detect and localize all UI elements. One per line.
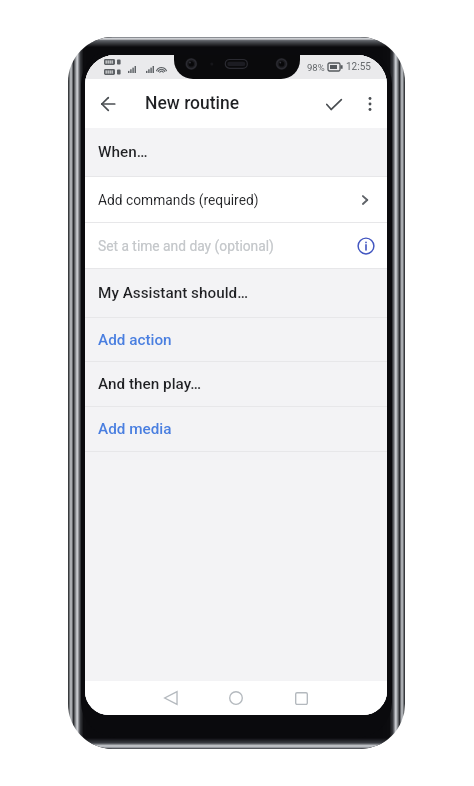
button[interactable]: And then play… — [85, 362, 387, 406]
button[interactable]: Save routine — [314, 84, 354, 124]
button[interactable]: Add media — [85, 407, 387, 451]
button[interactable]: More info — [355, 235, 376, 256]
button[interactable]: My Assistant should… — [85, 269, 387, 317]
button[interactable]: More options — [353, 87, 386, 120]
staticText: Add commands (required) — [98, 192, 259, 208]
button[interactable]: Home — [219, 681, 253, 715]
button[interactable]: Add action — [85, 318, 387, 361]
staticText: Add action — [98, 331, 172, 349]
button[interactable]: When… — [85, 128, 387, 176]
button[interactable]: Back — [154, 681, 188, 715]
staticText: Set a time and day (optional) — [98, 238, 274, 254]
staticText: My Assistant should… — [98, 284, 248, 302]
staticText: Add media — [98, 420, 172, 438]
staticText: New routine — [145, 93, 240, 114]
button[interactable]: Recent apps — [284, 681, 318, 715]
staticText: 12:55 — [346, 61, 371, 73]
staticText: And then play… — [98, 375, 202, 393]
button[interactable]: Add commands (required) — [85, 177, 387, 222]
button[interactable]: Set a time and day (optional) — [85, 223, 387, 268]
staticText: 98% — [307, 62, 325, 73]
button[interactable]: Navigate up — [88, 84, 128, 124]
staticText: When… — [98, 143, 148, 161]
